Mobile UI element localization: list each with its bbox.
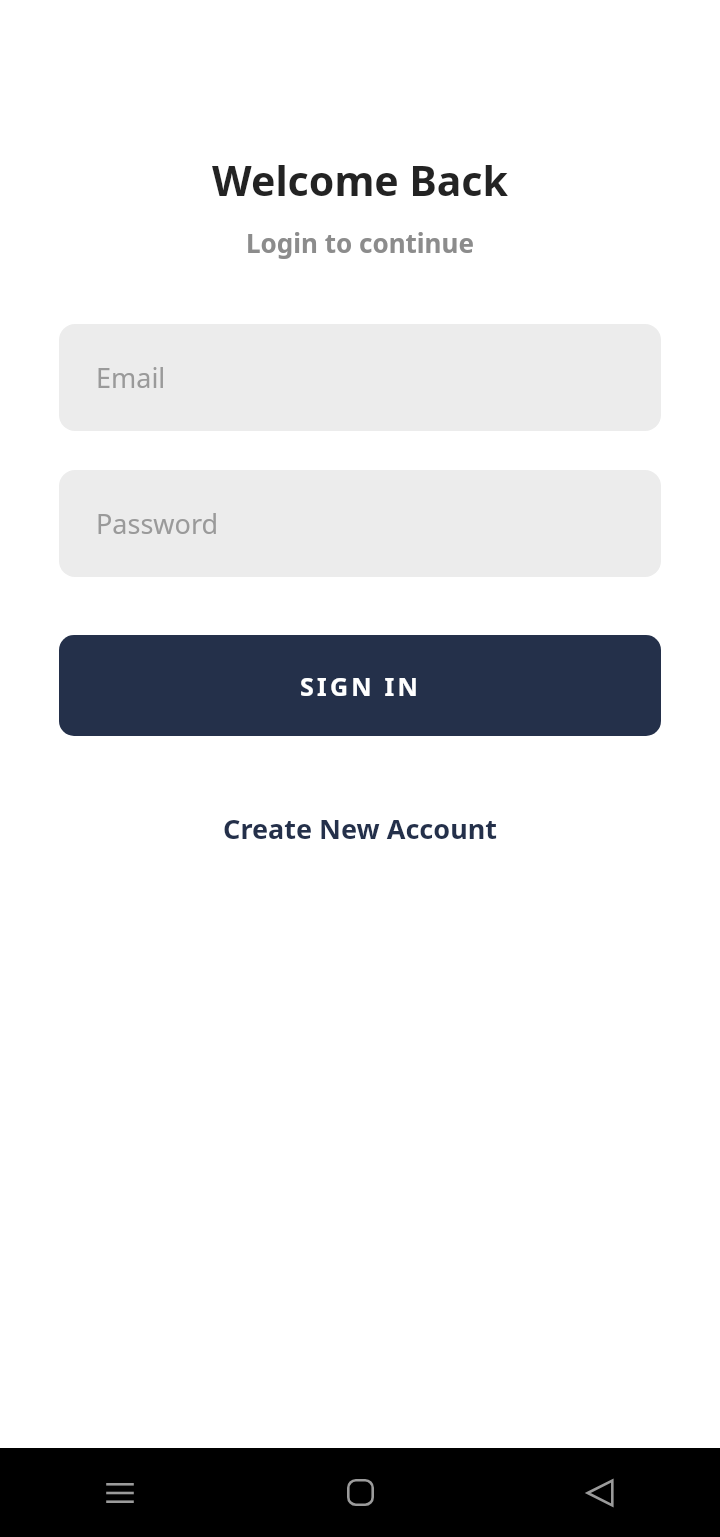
button[interactable]: Password	[59, 470, 661, 577]
staticText: SIGN IN	[300, 669, 421, 703]
staticText: Email	[96, 359, 166, 396]
staticText: Create New Account	[223, 810, 497, 847]
button[interactable]: Home	[240, 1448, 480, 1537]
button[interactable]: Sign in	[59, 635, 661, 736]
button[interactable]: Recent apps	[0, 1448, 240, 1537]
button[interactable]: Create New Account	[199, 798, 521, 859]
button[interactable]: Back	[480, 1448, 720, 1537]
staticText: Welcome Back	[212, 152, 508, 208]
staticText: Password	[96, 505, 219, 542]
staticText: Login to continue	[246, 225, 474, 260]
button[interactable]: Email	[59, 324, 661, 431]
